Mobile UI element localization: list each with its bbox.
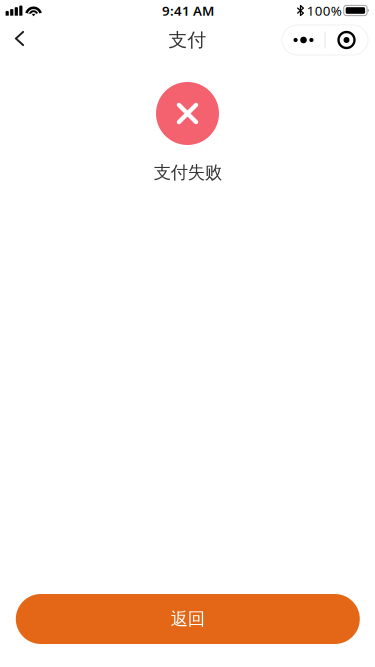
staticText: 9:41 AM: [162, 2, 214, 19]
button[interactable]: More options: [282, 25, 325, 55]
staticText: 100%: [307, 2, 342, 19]
button[interactable]: 返回: [16, 594, 360, 644]
button[interactable]: Back: [0, 16, 41, 60]
staticText: 支付: [168, 28, 206, 51]
staticText: 返回: [171, 608, 205, 630]
staticText: 支付失败: [154, 162, 222, 183]
button[interactable]: Close mini program: [325, 25, 368, 55]
